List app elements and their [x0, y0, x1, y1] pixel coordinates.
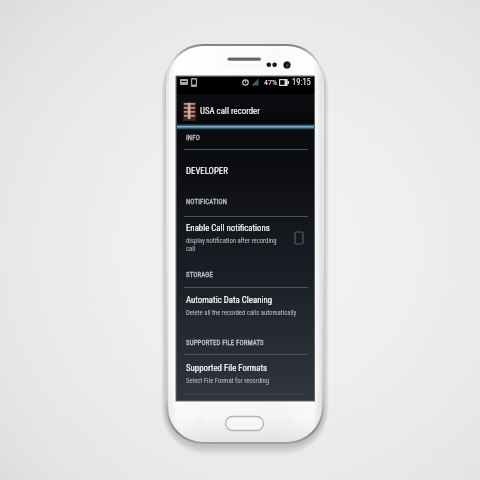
- button[interactable]: App icon: [177, 94, 314, 125]
- staticText: Enable Call notifications: [186, 223, 270, 233]
- staticText: Supported File Formats: [186, 363, 268, 373]
- staticText: 19:15: [292, 77, 311, 87]
- staticText: SUPPORTED FILE FORMATS: [186, 339, 264, 347]
- staticText: Select File Format for recording: [186, 377, 270, 385]
- staticText: Delete all the recorded calls automatica…: [186, 309, 297, 317]
- other: App icon: [183, 102, 196, 120]
- button[interactable]: DEVELOPER: [177, 153, 314, 190]
- staticText: 47%: [264, 78, 277, 87]
- staticText: USA call recorder: [200, 106, 260, 116]
- staticText: NOTIFICATION: [186, 198, 228, 206]
- button[interactable]: Automatic Data Cleaning: [177, 291, 314, 332]
- button[interactable]: Enable Call notifications: [177, 220, 314, 264]
- staticText: DEVELOPER: [186, 166, 228, 176]
- other: Enable call notifications checkbox: [295, 232, 303, 244]
- staticText: Automatic Data Cleaning: [186, 295, 273, 305]
- button[interactable]: Supported File Formats: [177, 358, 314, 395]
- staticText: INFO: [186, 134, 200, 142]
- staticText: display notification after recording cal…: [186, 237, 282, 253]
- staticText: STORAGE: [186, 271, 213, 279]
